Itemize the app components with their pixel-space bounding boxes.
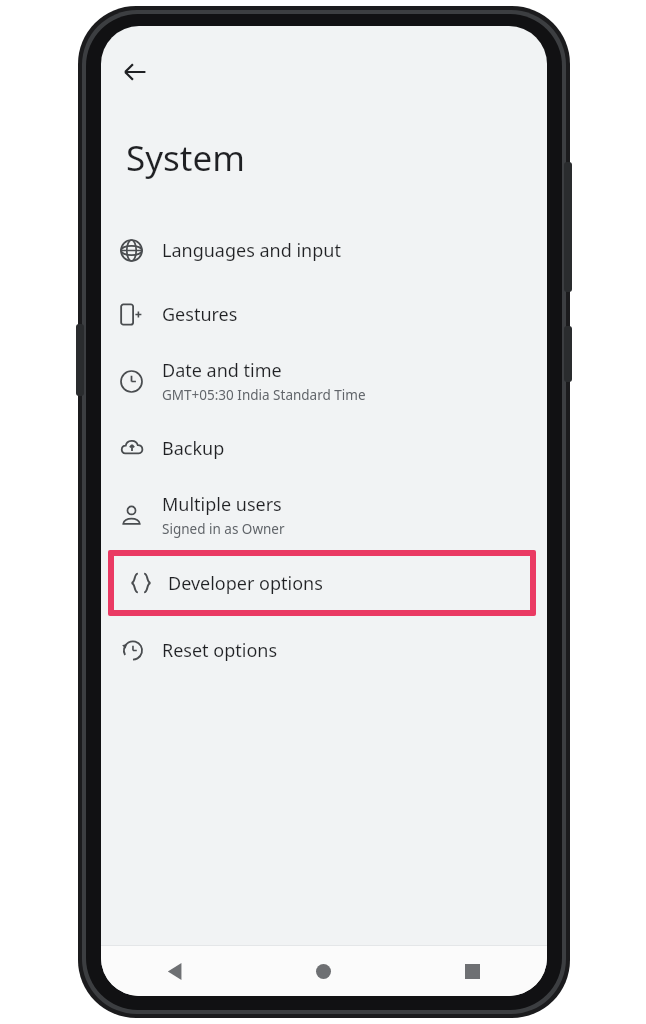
button[interactable]: Multiple users xyxy=(101,480,547,550)
staticText: Developer options xyxy=(168,571,323,596)
staticText: Languages and input xyxy=(162,238,341,263)
button[interactable]: Back xyxy=(101,946,249,996)
button[interactable]: Back xyxy=(111,48,159,96)
button[interactable]: Recent apps xyxy=(398,946,547,996)
staticText: Date and time xyxy=(162,358,282,383)
staticText: Reset options xyxy=(162,638,278,663)
button[interactable]: Languages and input xyxy=(101,218,547,282)
staticText: System xyxy=(126,134,245,182)
staticText: GMT+05:30 India Standard Time xyxy=(162,386,366,404)
staticText: Backup xyxy=(162,436,225,461)
staticText: Gestures xyxy=(162,302,238,327)
button[interactable]: Home xyxy=(249,946,398,996)
button[interactable]: Date and time xyxy=(101,346,547,416)
staticText: Multiple users xyxy=(162,492,282,517)
button[interactable]: Reset options xyxy=(101,616,547,684)
button[interactable]: Backup xyxy=(101,416,547,480)
button[interactable]: Developer options xyxy=(108,550,536,616)
staticText: Signed in as Owner xyxy=(162,520,285,538)
button[interactable]: Gestures xyxy=(101,282,547,346)
